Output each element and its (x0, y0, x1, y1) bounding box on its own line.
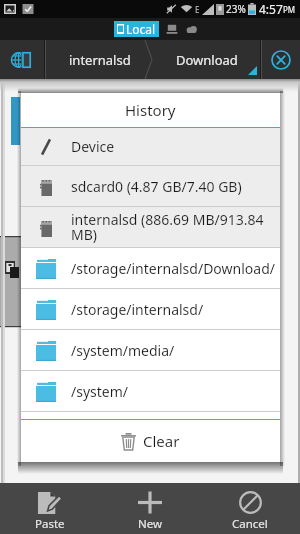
staticText: /system/ (71, 382, 129, 401)
staticText: E (195, 4, 200, 15)
staticText: internalsd (69, 51, 131, 69)
staticText: /storage/internalsd/ (71, 300, 204, 319)
button[interactable]: Device (21, 128, 280, 165)
button[interactable]: /storage/internalsd/Download/ (21, 248, 280, 288)
button[interactable]: internalsd (886.69 MB/913.84 MB) (21, 207, 280, 247)
button[interactable]: New (100, 483, 200, 534)
staticText: /system/media/ (71, 341, 175, 360)
button[interactable]: Local storage (0, 40, 44, 79)
staticText: Paste (35, 516, 65, 532)
button[interactable]: /storage/internalsd/ (21, 289, 280, 329)
button[interactable]: Computer (166, 23, 178, 35)
button[interactable]: sdcard0 (4.87 GB/7.40 GB) (21, 166, 280, 206)
button[interactable]: /system/ (21, 371, 280, 411)
staticText: Clear (143, 431, 180, 451)
staticText: Download (176, 51, 238, 69)
staticText: History (125, 100, 176, 120)
button[interactable]: Paste (0, 483, 100, 534)
staticText: New (138, 516, 163, 532)
button[interactable]: Cloud (185, 23, 198, 36)
staticText: 23% (226, 2, 246, 16)
staticText: Cancel (232, 516, 268, 532)
button[interactable]: Local (114, 21, 159, 37)
staticText: 4:57 (259, 1, 283, 17)
staticText: /storage/internalsd/Download/ (71, 259, 275, 278)
staticText: sdcard0 (4.87 GB/7.40 GB) (71, 177, 242, 196)
button[interactable]: internalsd (46, 40, 153, 79)
staticText: internalsd (886.69 MB/913.84 MB) (71, 210, 278, 244)
button[interactable]: Close (262, 40, 300, 79)
button[interactable]: /system/media/ (21, 330, 280, 370)
staticText: PM (283, 4, 296, 15)
button[interactable]: Clear (21, 420, 280, 462)
button[interactable]: Cancel (200, 483, 300, 534)
staticText: Device (71, 137, 115, 156)
button[interactable]: Download (153, 40, 260, 79)
staticText: Local (126, 21, 156, 37)
